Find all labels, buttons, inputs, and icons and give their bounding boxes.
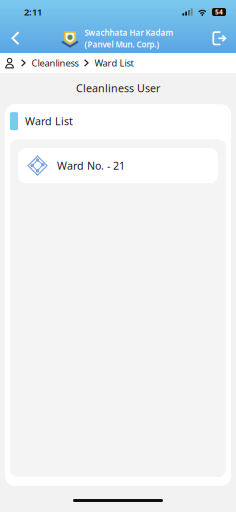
staticText: 54 xyxy=(215,8,223,16)
staticText: Ward List xyxy=(25,114,73,128)
staticText: Ward No. - 21 xyxy=(57,159,125,173)
staticText: Cleanliness xyxy=(31,57,78,69)
staticText: (Panvel Mun. Corp.) xyxy=(84,39,159,50)
staticText: 2:11 xyxy=(24,6,42,18)
staticText: Ward List xyxy=(94,57,133,69)
staticText: Swachhata Har Kadam xyxy=(84,27,173,38)
button[interactable]: Back xyxy=(5,24,26,52)
button[interactable]: Log out xyxy=(209,24,230,52)
staticText: Cleanliness User xyxy=(76,81,160,95)
button[interactable]: Cleanliness xyxy=(26,57,78,69)
button[interactable]: Ward No. - 21 xyxy=(18,148,218,183)
